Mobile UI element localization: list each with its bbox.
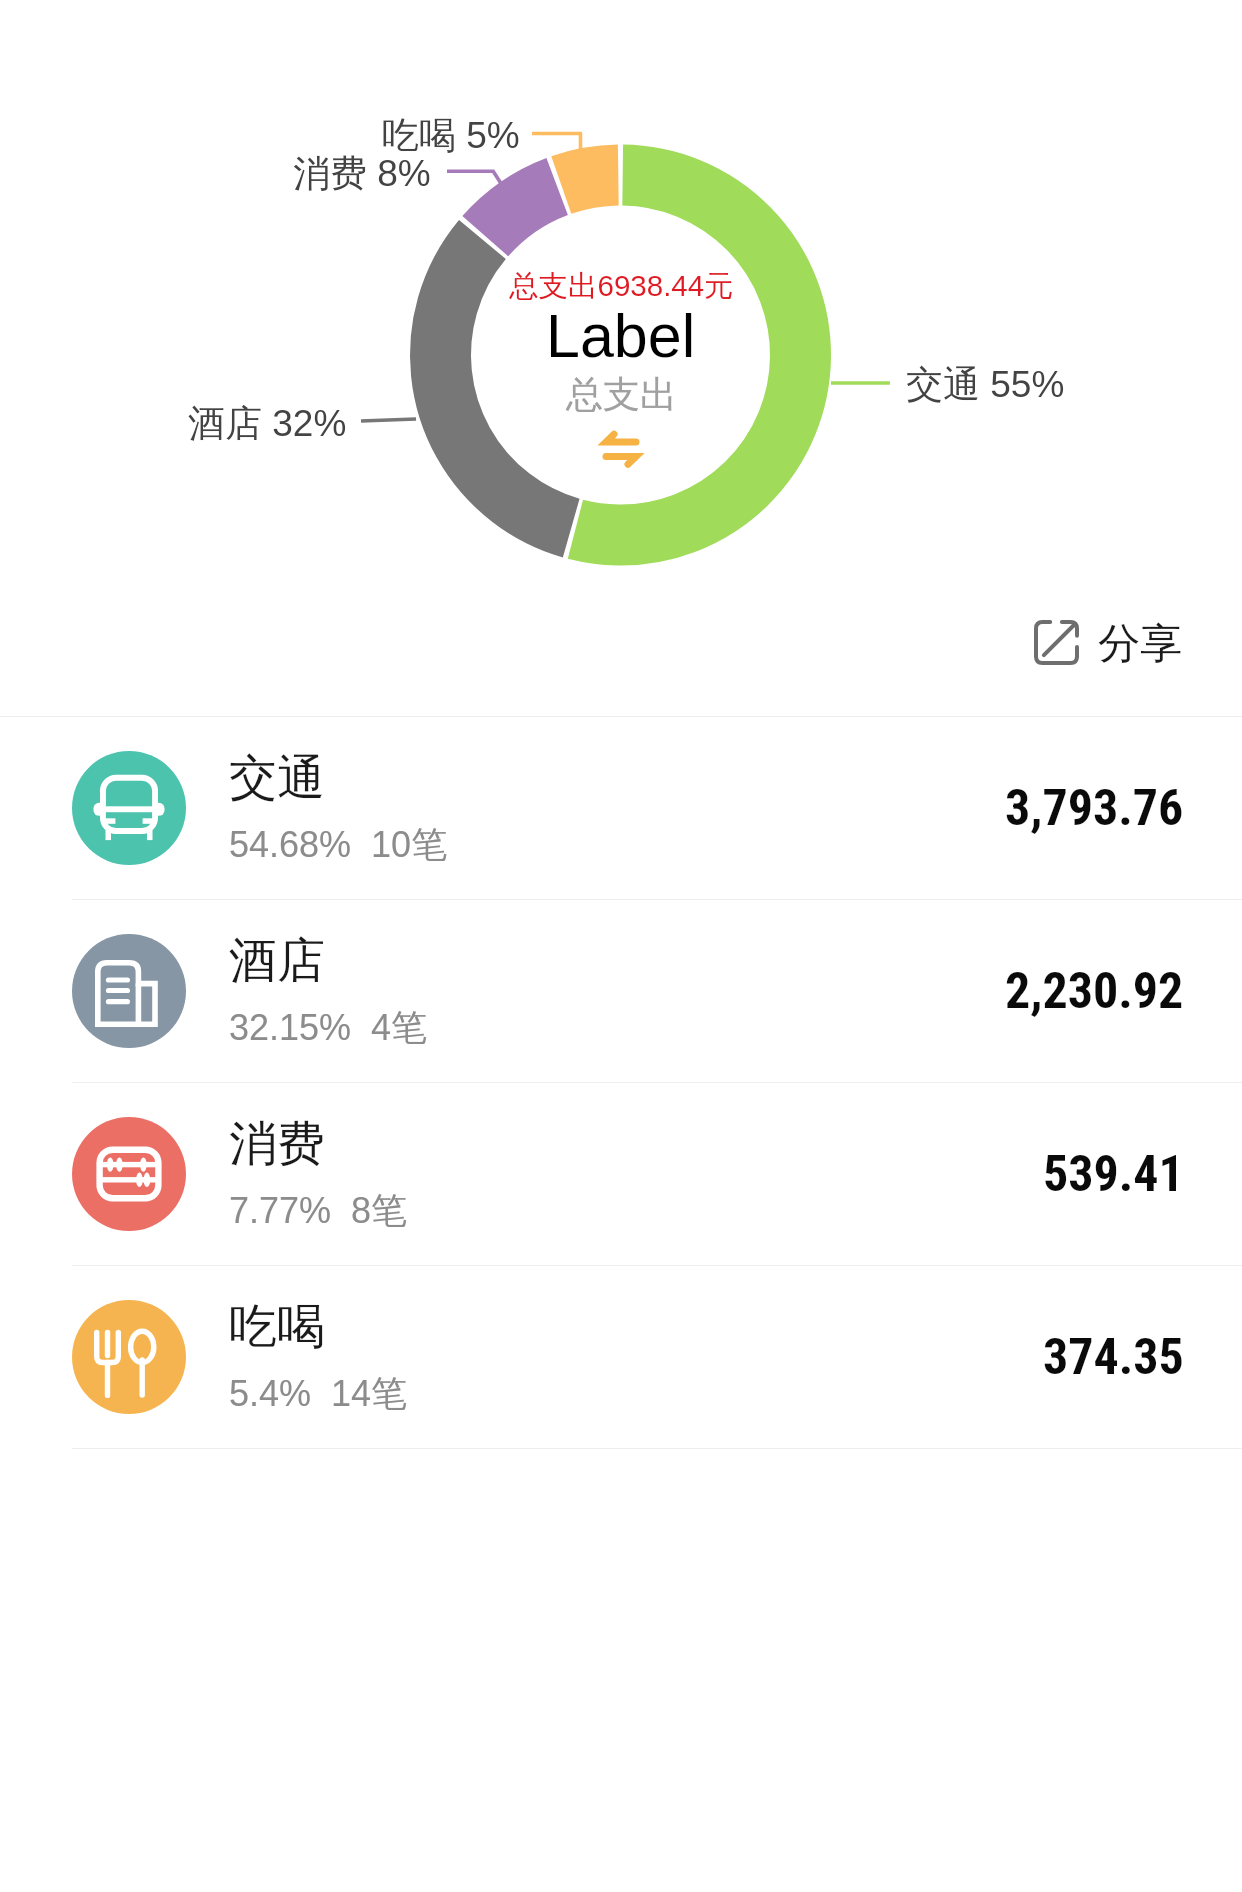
staticText: 5.4% 14笔 <box>229 1371 408 1416</box>
staticText: 交通 55% <box>906 361 1065 408</box>
button[interactable]: 交通 <box>0 717 1242 899</box>
button[interactable]: Switch expense / income <box>592 423 648 477</box>
staticText: 539.41 <box>1043 1145 1184 1204</box>
staticText: 总支出 <box>566 371 677 418</box>
staticText: 7.77% 8笔 <box>229 1188 408 1233</box>
staticText: Label <box>546 302 696 370</box>
staticText: 酒店 32% <box>188 400 347 447</box>
staticText: 374.35 <box>1043 1328 1184 1387</box>
staticText: 吃喝 5% <box>382 112 520 159</box>
staticText: 消费 <box>229 1114 325 1174</box>
button[interactable]: 分享 <box>1026 601 1190 682</box>
staticText: 酒店 <box>229 931 325 991</box>
button[interactable]: 吃喝 <box>0 1266 1242 1448</box>
staticText: 3,793.76 <box>1005 779 1184 838</box>
button[interactable]: 酒店 <box>0 900 1242 1082</box>
staticText: 分享 <box>1098 618 1182 671</box>
staticText: 54.68% 10笔 <box>229 822 448 867</box>
staticText: 32.15% 4笔 <box>229 1005 428 1050</box>
staticText: 2,230.92 <box>1005 962 1184 1021</box>
staticText: 消费 8% <box>293 150 431 197</box>
staticText: 交通 <box>229 748 325 808</box>
staticText: 吃喝 <box>229 1297 325 1357</box>
button[interactable]: 消费 <box>0 1083 1242 1265</box>
staticText: 总支出6938.44元 <box>509 268 734 305</box>
